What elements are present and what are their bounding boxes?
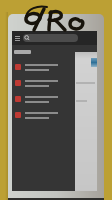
button[interactable]: Menu xyxy=(14,35,21,42)
button[interactable]: More options xyxy=(12,91,97,107)
button[interactable]: More options xyxy=(12,107,97,123)
button[interactable]: More options xyxy=(12,59,97,75)
button[interactable]: More options xyxy=(89,75,97,91)
button[interactable]: More options xyxy=(12,75,97,91)
button[interactable]: More options xyxy=(89,59,97,75)
button[interactable] xyxy=(75,52,97,191)
button[interactable]: Search xyxy=(23,34,78,42)
